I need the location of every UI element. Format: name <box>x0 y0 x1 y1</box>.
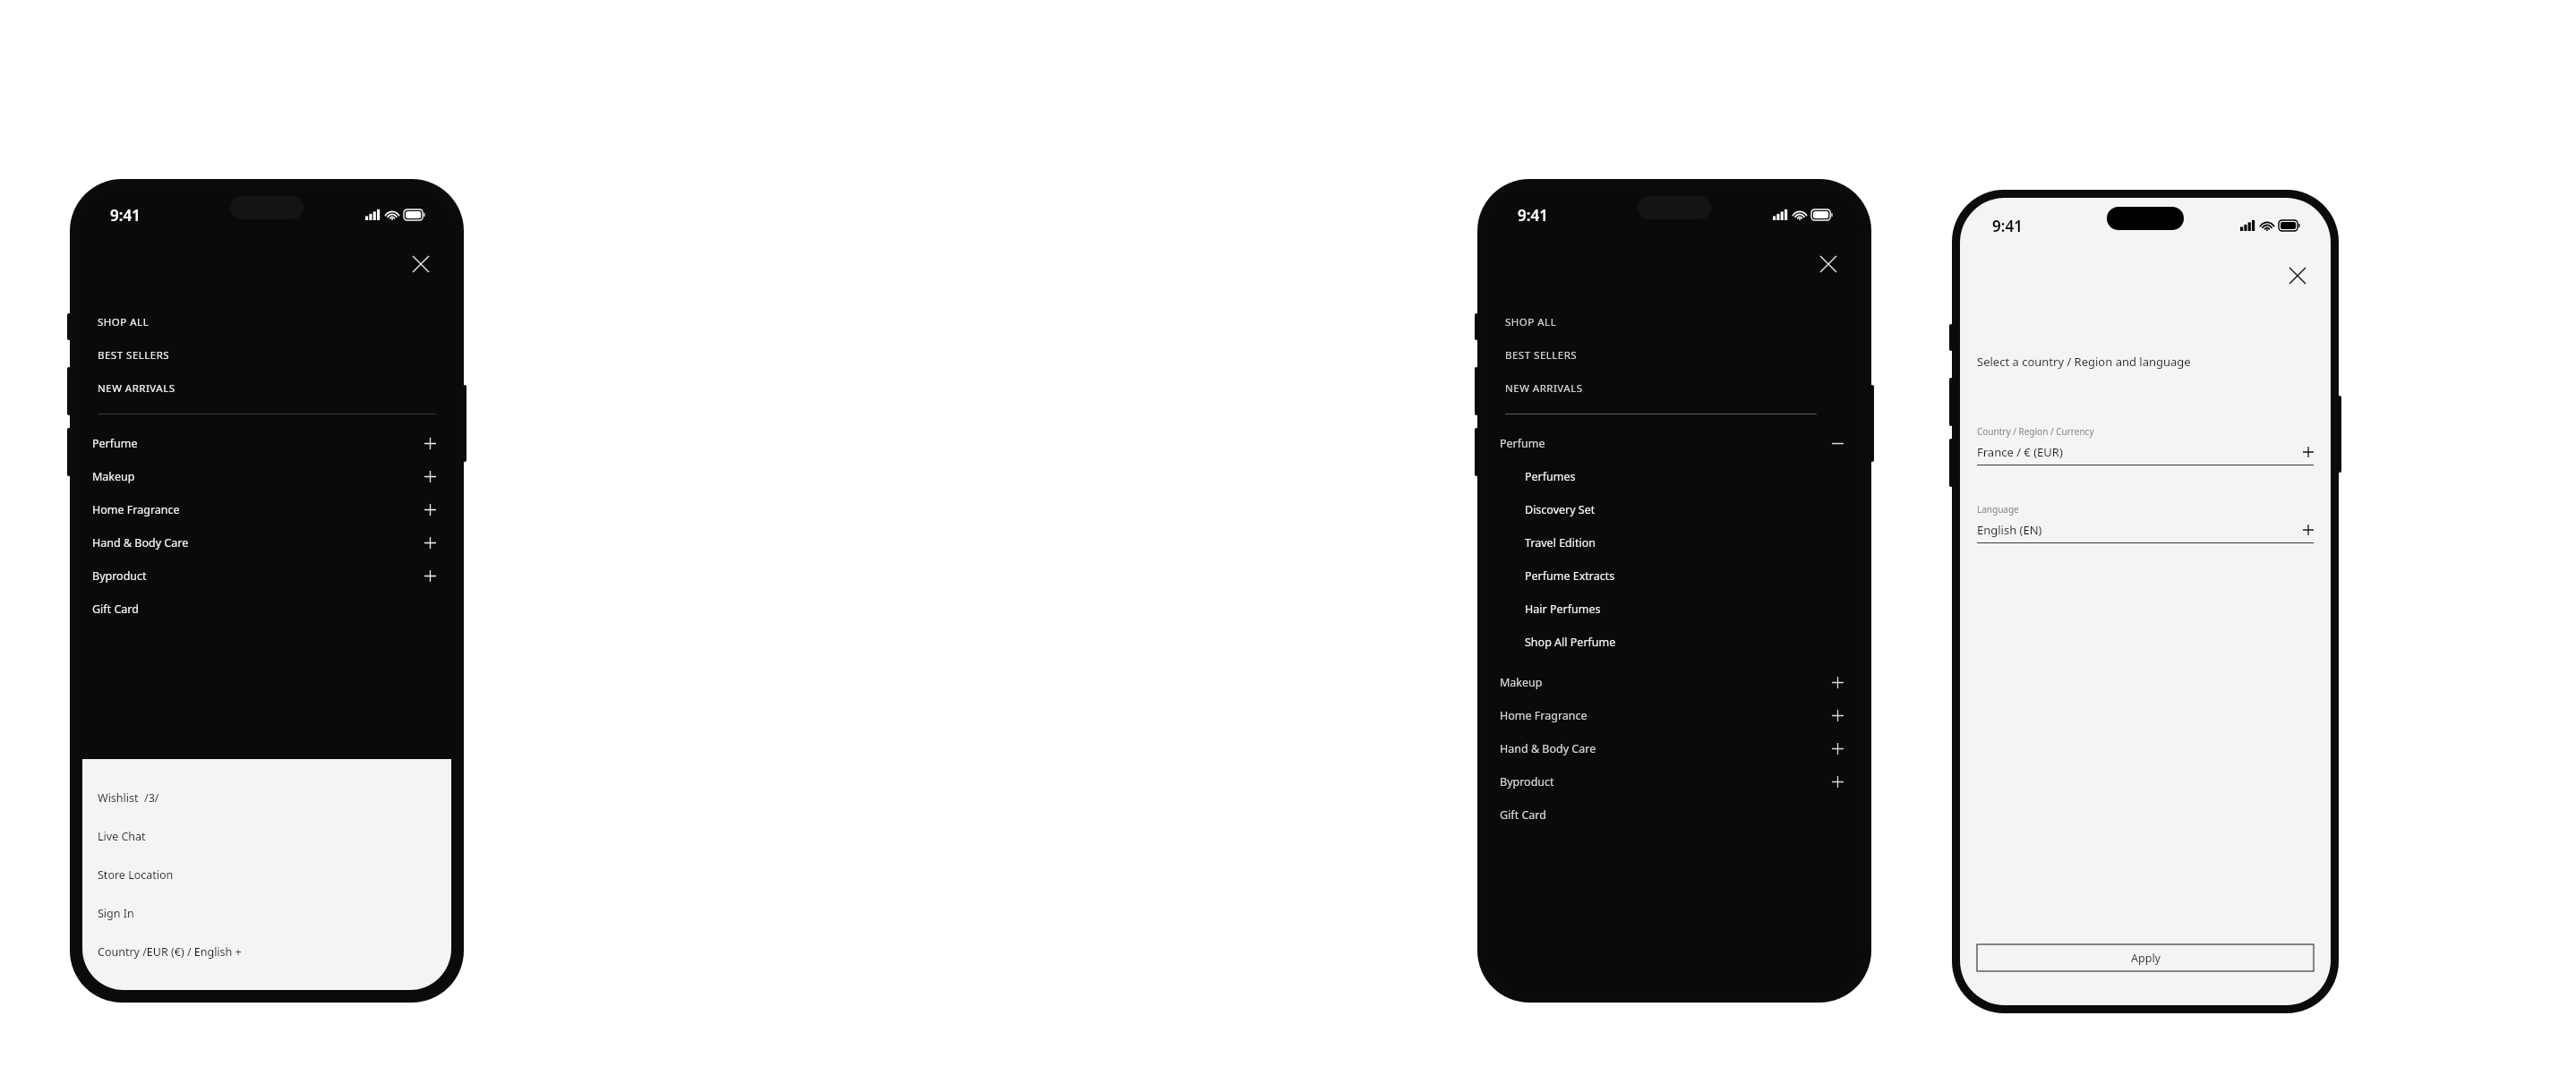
button[interactable]: Gift Card <box>1485 798 1863 832</box>
staticText: Travel Edition <box>1525 535 1596 551</box>
button[interactable]: Hair Perfumes <box>1485 593 1863 626</box>
button[interactable]: Wishlist /3/ <box>82 779 451 817</box>
button[interactable]: Home Fragrance <box>1485 699 1863 732</box>
button[interactable]: Travel Edition <box>1485 526 1863 559</box>
button[interactable]: Store Location <box>82 856 451 894</box>
button[interactable]: Apply <box>1977 944 2314 971</box>
staticText: Discovery Set <box>1525 502 1596 517</box>
staticText: English (EN) <box>1977 522 2042 538</box>
staticText: NEW ARRIVALS <box>1505 381 1583 396</box>
button[interactable]: Perfume <box>78 427 456 460</box>
staticText: Perfume <box>1500 436 1545 451</box>
staticText: Country / Region / Currency <box>1977 425 2094 438</box>
button[interactable]: Close <box>2282 260 2313 291</box>
staticText: Country /EUR (€) / English + <box>98 944 242 960</box>
staticText: Select a country / Region and language <box>1977 354 2191 370</box>
staticText: Sign In <box>98 906 134 921</box>
button[interactable]: Byproduct <box>78 559 456 593</box>
button[interactable]: BEST SELLERS <box>1485 338 1863 371</box>
staticText: France / € (EUR) <box>1977 444 2063 460</box>
staticText: Makeup <box>92 469 135 484</box>
button[interactable]: NEW ARRIVALS <box>1485 371 1863 405</box>
staticText: BEST SELLERS <box>1505 348 1578 363</box>
staticText: 9:41 <box>1518 205 1548 226</box>
staticText: Perfume <box>92 436 138 451</box>
staticText: Shop All Perfume <box>1525 635 1616 650</box>
button[interactable]: Makeup <box>78 460 456 493</box>
staticText: Hand & Body Care <box>1500 741 1596 756</box>
staticText: Hair Perfumes <box>1525 602 1601 617</box>
staticText: SHOP ALL <box>1505 315 1557 329</box>
button[interactable]: Perfume <box>1485 427 1863 460</box>
staticText: Wishlist /3/ <box>98 790 159 806</box>
staticText: 9:41 <box>1992 216 2023 236</box>
staticText: Makeup <box>1500 675 1543 690</box>
staticText: Store Location <box>98 867 174 883</box>
button[interactable]: Discovery Set <box>1485 493 1863 526</box>
button[interactable]: Home Fragrance <box>78 493 456 526</box>
staticText: Gift Card <box>92 602 139 617</box>
button[interactable]: Perfume Extracts <box>1485 559 1863 593</box>
staticText: Apply <box>2131 951 2161 966</box>
button[interactable]: Sign In <box>82 894 451 933</box>
button[interactable]: Close <box>1813 249 1844 279</box>
staticText: Perfumes <box>1525 469 1576 484</box>
staticText: Gift Card <box>1500 807 1546 823</box>
staticText: Hand & Body Care <box>92 535 189 551</box>
button[interactable]: Country /EUR (€) / English + <box>82 933 451 971</box>
button[interactable]: Shop All Perfume <box>1485 626 1863 659</box>
staticText: Home Fragrance <box>92 502 180 517</box>
button[interactable]: Close <box>406 249 436 279</box>
staticText: SHOP ALL <box>98 315 150 329</box>
button[interactable]: Perfumes <box>1485 460 1863 493</box>
button[interactable]: Language <box>1977 503 2314 543</box>
staticText: Home Fragrance <box>1500 708 1588 723</box>
button[interactable]: Hand & Body Care <box>1485 732 1863 765</box>
staticText: Language <box>1977 503 2019 516</box>
button[interactable]: NEW ARRIVALS <box>78 371 456 405</box>
button[interactable]: Byproduct <box>1485 765 1863 798</box>
button[interactable]: BEST SELLERS <box>78 338 456 371</box>
button[interactable]: Gift Card <box>78 593 456 626</box>
staticText: BEST SELLERS <box>98 348 170 363</box>
button[interactable]: Live Chat <box>82 817 451 856</box>
staticText: Byproduct <box>92 568 147 584</box>
button[interactable]: SHOP ALL <box>1485 305 1863 338</box>
button[interactable]: Hand & Body Care <box>78 526 456 559</box>
staticText: Byproduct <box>1500 774 1554 790</box>
staticText: Perfume Extracts <box>1525 568 1615 584</box>
button[interactable]: Makeup <box>1485 666 1863 699</box>
staticText: NEW ARRIVALS <box>98 381 175 396</box>
staticText: 9:41 <box>110 205 141 226</box>
staticText: Live Chat <box>98 829 146 844</box>
button[interactable]: Country / Region / Currency <box>1977 425 2314 465</box>
button[interactable]: SHOP ALL <box>78 305 456 338</box>
